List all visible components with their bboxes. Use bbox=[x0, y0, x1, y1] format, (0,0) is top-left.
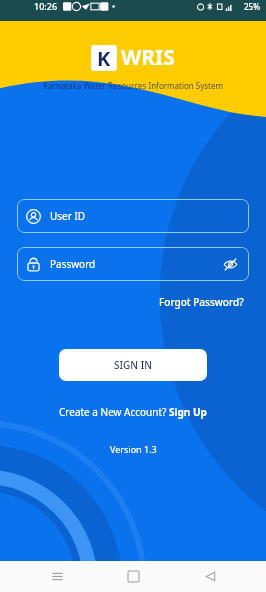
staticText: WRIS bbox=[121, 43, 175, 72]
staticText: Version 1.3 bbox=[110, 443, 157, 455]
button[interactable]: Forgot Password? bbox=[157, 293, 246, 311]
staticText: Password bbox=[50, 257, 96, 271]
button[interactable]: Home bbox=[113, 561, 153, 592]
staticText: 25% bbox=[244, 1, 260, 12]
staticText: K bbox=[97, 45, 111, 71]
staticText: Karnataka Water Resources Information Sy… bbox=[43, 80, 223, 91]
staticText: 10:26 bbox=[34, 0, 58, 12]
button[interactable]: Back bbox=[190, 561, 230, 592]
button[interactable]: Password bbox=[17, 247, 249, 281]
staticText: SIGN IN bbox=[114, 358, 152, 372]
button[interactable]: SIGN IN bbox=[59, 349, 207, 381]
button[interactable]: Create a New Account? Sign Up bbox=[55, 403, 211, 421]
staticText: Forgot Password? bbox=[159, 295, 244, 309]
button[interactable]: Recent apps bbox=[37, 561, 77, 592]
button[interactable]: User ID bbox=[17, 199, 249, 233]
staticText: Create a New Account? Sign Up bbox=[59, 405, 207, 419]
button[interactable]: Show password bbox=[221, 255, 240, 274]
staticText: User ID bbox=[50, 209, 86, 223]
